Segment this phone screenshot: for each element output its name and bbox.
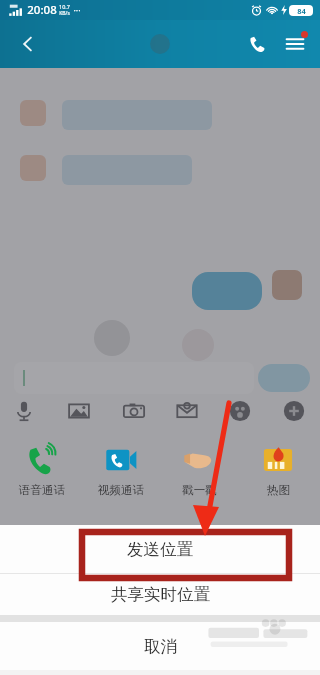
button[interactable]: Gallery	[60, 392, 98, 430]
staticText: 取消	[144, 636, 177, 657]
button[interactable]: Voice message	[5, 392, 43, 430]
button[interactable]: 发送位置	[0, 525, 320, 573]
button[interactable]: Video	[168, 392, 206, 430]
button[interactable]: 取消	[0, 622, 320, 670]
staticText: 语音通话	[19, 483, 65, 497]
button[interactable]: Emoji	[221, 392, 259, 430]
staticText: 共享实时位置	[111, 584, 210, 605]
button[interactable]: 视频通话	[85, 440, 157, 497]
button[interactable]: Menu	[276, 25, 314, 63]
staticText: 84	[297, 6, 306, 16]
staticText: 10.7	[59, 3, 70, 10]
staticText: KB/s	[59, 10, 70, 17]
staticText: ···	[73, 4, 81, 16]
staticText: 热图	[267, 483, 290, 497]
staticText: 20:08	[27, 2, 57, 18]
button[interactable]: 热图	[242, 440, 314, 497]
button[interactable]: Call	[238, 25, 276, 63]
button[interactable]: 语音通话	[6, 440, 78, 497]
staticText: 发送位置	[127, 539, 193, 560]
button[interactable]: Camera	[115, 392, 153, 430]
staticText: 视频通话	[98, 483, 144, 497]
button[interactable]: 共享实时位置	[0, 574, 320, 615]
button[interactable]: Back	[8, 24, 48, 64]
button[interactable]: 戳一戳	[163, 440, 235, 497]
staticText: 戳一戳	[182, 483, 217, 497]
button[interactable]: More	[275, 392, 313, 430]
